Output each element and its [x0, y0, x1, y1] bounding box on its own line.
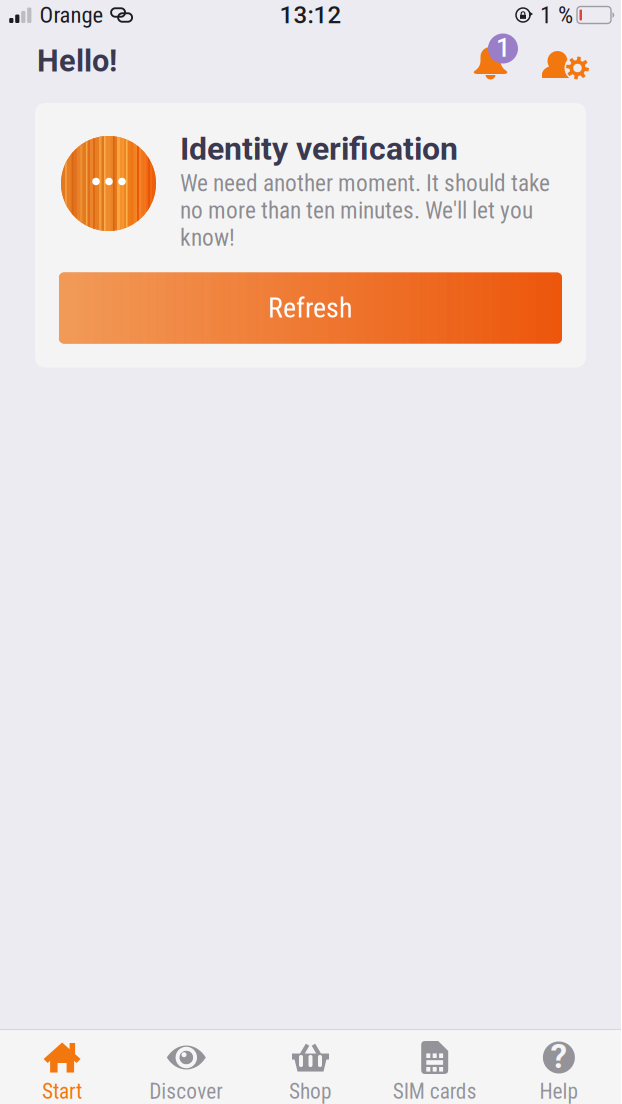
staticText: We need another moment. It should take n… — [180, 169, 550, 251]
button[interactable]: SIM cards — [373, 1030, 497, 1104]
staticText: 1 — [496, 33, 510, 63]
staticText: 1 % — [540, 1, 573, 29]
staticText: Start — [42, 1079, 82, 1104]
staticText: Hello! — [37, 43, 117, 79]
staticText: Shop — [289, 1079, 332, 1104]
staticText: Discover — [149, 1079, 223, 1104]
button[interactable]: Account settings — [520, 41, 588, 80]
staticText: 13:12 — [279, 1, 341, 29]
button[interactable]: Shop — [248, 1030, 373, 1104]
staticText: Identity verification — [180, 130, 458, 167]
button[interactable]: ? — [497, 1030, 621, 1104]
button[interactable]: Notifications, 1 new — [473, 41, 520, 80]
staticText: ? — [550, 1037, 567, 1076]
staticText: Orange — [40, 2, 104, 28]
button[interactable]: Refresh — [59, 272, 562, 343]
staticText: Refresh — [268, 292, 353, 324]
staticText: Help — [539, 1079, 578, 1104]
button[interactable]: Start — [0, 1030, 124, 1104]
button[interactable]: Discover — [124, 1030, 248, 1104]
staticText: SIM cards — [393, 1079, 477, 1104]
